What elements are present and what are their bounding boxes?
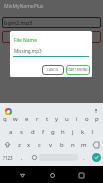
staticText: v	[49, 141, 53, 149]
staticText: c	[38, 141, 41, 149]
button[interactable]: d	[27, 125, 38, 138]
staticText: m	[81, 141, 87, 149]
button[interactable]: j	[68, 125, 78, 138]
button[interactable]: s	[16, 125, 27, 138]
staticText: bgm2.mp3	[4, 19, 33, 26]
staticText: z	[18, 141, 21, 149]
staticText: ?123	[3, 155, 13, 161]
staticText: b	[60, 141, 64, 149]
button[interactable]: CANCEL	[42, 65, 64, 75]
staticText: y	[55, 115, 59, 123]
staticText: w	[13, 115, 18, 123]
button[interactable]: Home	[44, 167, 60, 183]
staticText: x	[27, 141, 31, 149]
staticText: i	[76, 115, 78, 123]
button[interactable]: Emoji	[29, 151, 39, 164]
button[interactable]: q	[0, 112, 10, 125]
button[interactable]: e	[21, 112, 32, 125]
staticText: h	[61, 128, 65, 136]
button[interactable]: r	[32, 112, 42, 125]
staticText: Missing.mp3	[14, 48, 42, 54]
staticText: j	[72, 128, 74, 136]
button[interactable]: g	[48, 125, 58, 138]
staticText: k	[81, 128, 85, 136]
button[interactable]: p	[92, 112, 102, 125]
button[interactable]: a	[5, 125, 16, 138]
button[interactable]: h	[58, 125, 68, 138]
button[interactable]: u	[62, 112, 72, 125]
button[interactable]: Recents	[73, 167, 89, 183]
staticText: a	[9, 128, 13, 136]
button[interactable]: m	[78, 138, 89, 151]
staticText: f	[42, 128, 45, 136]
staticText: CANCEL	[47, 68, 59, 72]
staticText: s	[20, 128, 23, 136]
staticText: File Name	[14, 37, 37, 44]
staticText: u	[65, 115, 69, 123]
staticText: MixMyNamePlus	[4, 3, 44, 10]
staticText: t	[46, 115, 49, 123]
staticText: START MIXING	[67, 68, 89, 72]
button[interactable]: .	[78, 151, 90, 164]
staticText: ,	[21, 154, 23, 162]
button[interactable]: Back	[14, 167, 30, 183]
button[interactable]: y	[52, 112, 62, 125]
button[interactable]: Shift	[0, 138, 14, 151]
staticText: n	[71, 141, 75, 149]
button[interactable]: o	[82, 112, 92, 125]
button[interactable]: START MIXING	[66, 65, 90, 75]
button[interactable]: ?123	[0, 151, 15, 164]
staticText: g	[51, 128, 55, 136]
button[interactable]: v	[45, 138, 56, 151]
staticText: l	[92, 128, 94, 136]
button[interactable]: x	[24, 138, 34, 151]
button[interactable]: c	[34, 138, 45, 151]
button[interactable]: b	[56, 138, 67, 151]
button[interactable]: n	[67, 138, 78, 151]
staticText: o	[85, 115, 89, 123]
button[interactable]: t	[42, 112, 52, 125]
button[interactable]: l	[88, 125, 98, 138]
staticText: q	[3, 115, 7, 123]
button[interactable]: f	[38, 125, 48, 138]
staticText: d	[31, 128, 35, 136]
staticText: p	[95, 115, 99, 123]
button[interactable]: k	[78, 125, 88, 138]
button[interactable]: i	[72, 112, 82, 125]
button[interactable]: Enter	[90, 151, 103, 164]
staticText: .	[83, 154, 85, 162]
staticText: e	[25, 115, 29, 123]
button[interactable]: w	[10, 112, 21, 125]
button[interactable]: z	[14, 138, 24, 151]
button[interactable]: ,	[15, 151, 29, 164]
button[interactable]: Backspace	[89, 138, 103, 151]
staticText: r	[36, 115, 39, 123]
